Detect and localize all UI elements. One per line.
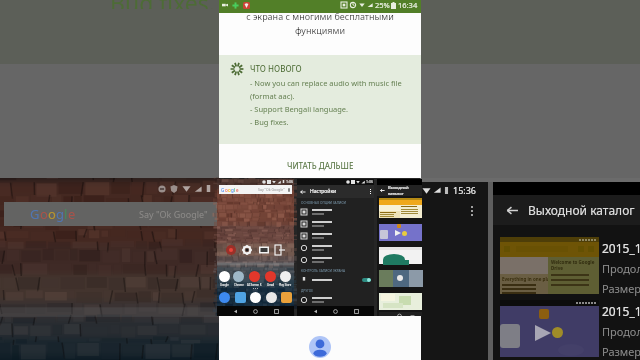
staticText: Продолж [602,324,640,339]
staticText: 1:06 [286,179,293,184]
staticText: o [48,205,56,223]
staticText: ЧТО НОВОГО [250,63,302,74]
button[interactable]: 1:06 [297,179,374,316]
staticText: g [231,187,234,193]
staticText: Выходной каталог [388,185,419,196]
staticText: o [40,205,48,223]
staticText: Продолж [602,261,640,276]
button[interactable]: 2015_11 [379,221,422,242]
staticText: AZ Screen R [247,283,262,287]
button[interactable]: 2015_11 [379,198,422,219]
staticText: 16:34 [398,0,418,10]
staticText: Welcome to Google [551,259,595,265]
staticText: (format aac). [250,91,295,104]
staticText: - Support Bengali language. [250,104,349,117]
staticText: o [228,187,231,193]
button[interactable]: 2015_11 [379,244,422,265]
staticText: Google [220,283,229,287]
staticText: 25% [375,0,390,10]
staticText: g [56,205,64,223]
button[interactable]: 2015_11 [379,267,422,288]
staticText: - Bug fixes. [250,117,289,130]
staticText: ДРУГОЕ [301,289,313,293]
staticText: - Now you can replace audio with music f… [250,78,402,91]
button[interactable]: 1:06 [217,179,294,316]
button[interactable]: Back [492,195,640,225]
staticText: КОНТРОЛЬ ЗАПИСИ ЭКРАНА [301,269,345,273]
staticText: Drive [551,265,563,271]
staticText: с экрана с многими бесплатными [219,10,421,22]
staticText: Размер: [602,344,640,359]
staticText: Bug fixes. [110,0,215,9]
staticText: Play Store [279,283,292,287]
button[interactable]: 2015_11 [379,290,422,311]
staticText: o [225,187,228,193]
staticText: e [68,205,76,223]
staticText: ЧИТАТЬ ДАЛЬШЕ [287,160,354,171]
button[interactable]: Everything in one place [500,237,640,296]
staticText: 1:06 [366,179,373,184]
staticText: Say "Ok Google" [258,187,285,192]
staticText: G [30,205,40,223]
button[interactable]: Выходной каталог [377,179,422,316]
staticText: 15:36 [453,184,477,196]
staticText: 2015_11, [602,303,640,319]
button[interactable]: 2015_11, [500,300,640,359]
staticText: Chrome [234,283,244,287]
staticText: e [236,187,239,193]
staticText: Gmail [267,283,275,287]
staticText: функциями [219,24,421,36]
staticText: Say "Ok Google" [139,208,208,220]
staticText: l [234,187,236,193]
staticText: G [221,187,225,193]
staticText: 2015_11, [602,240,640,256]
staticText: Выходной каталог [528,202,635,218]
staticText: Размер: [602,281,640,296]
staticText: Настройки [310,188,337,195]
staticText: Everything in one place [502,276,548,282]
button[interactable]: ЧИТАТЬ ДАЛЬШЕ [219,155,421,175]
staticText: l [64,205,68,223]
staticText: ОСНОВНЫЕ ОПЦИИ ЗАПИСИ [301,201,346,205]
